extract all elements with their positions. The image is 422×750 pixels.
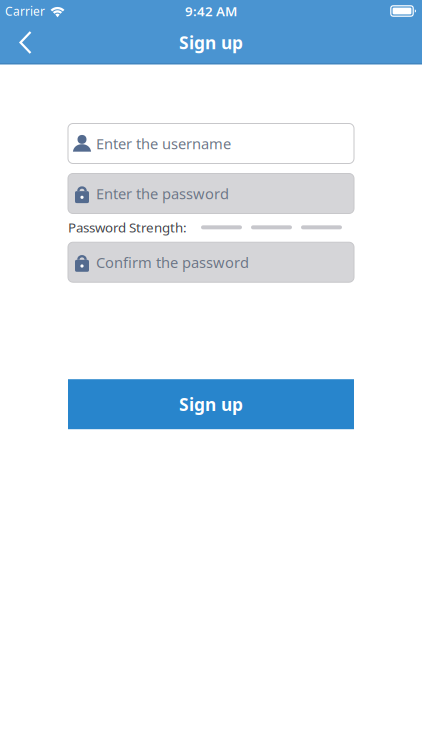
button[interactable]: Enter the username bbox=[68, 123, 354, 163]
button[interactable]: Back bbox=[0, 30, 33, 54]
staticText: Confirm the password bbox=[96, 252, 249, 272]
staticText: Carrier bbox=[5, 3, 45, 19]
button[interactable]: Enter the password bbox=[68, 173, 354, 213]
staticText: Sign up bbox=[179, 393, 243, 416]
staticText: 9:42 AM bbox=[185, 2, 237, 20]
staticText: Enter the username bbox=[96, 134, 231, 153]
button[interactable]: Confirm the password bbox=[68, 242, 354, 282]
staticText: Password Strength: bbox=[68, 218, 187, 236]
button[interactable]: Sign up bbox=[68, 379, 354, 429]
staticText: Enter the password bbox=[96, 184, 229, 203]
staticText: Sign up bbox=[179, 31, 243, 54]
